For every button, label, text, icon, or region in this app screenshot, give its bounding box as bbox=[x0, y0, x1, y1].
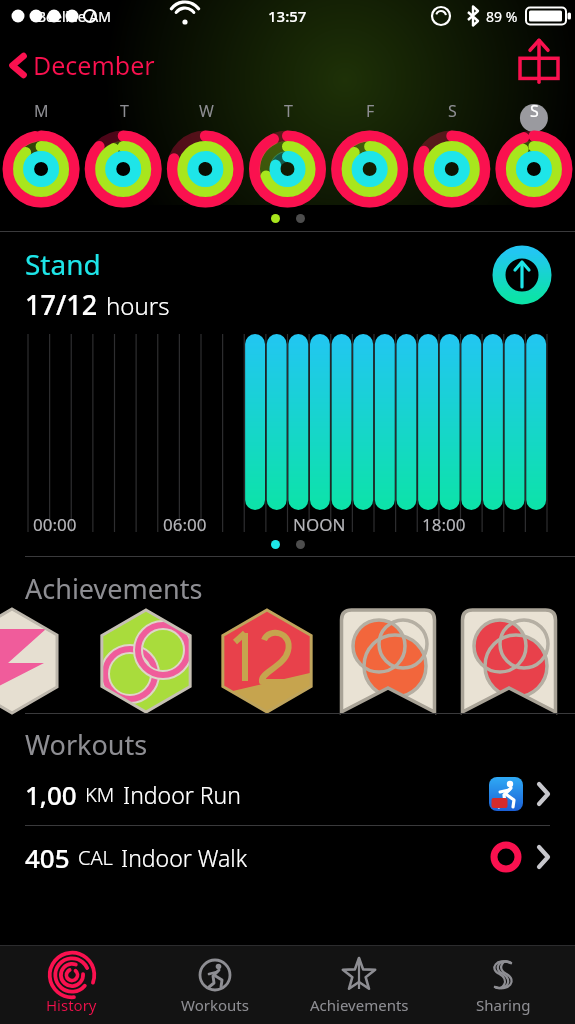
staticText: Achievements bbox=[25, 570, 203, 607]
staticText: M bbox=[34, 100, 49, 122]
button[interactable]: 1,00 bbox=[0, 763, 575, 825]
staticText: 13:57 bbox=[268, 6, 307, 26]
staticText: 00:00 bbox=[33, 513, 77, 536]
staticText: Achievements bbox=[310, 995, 409, 1015]
staticText: December bbox=[33, 48, 155, 82]
button[interactable]: Achievement badges bbox=[0, 607, 575, 713]
staticText: KM bbox=[85, 781, 115, 808]
button[interactable]: Stand goal complete bbox=[492, 245, 552, 305]
staticText: 89 % bbox=[486, 7, 518, 26]
button[interactable]: Sharing bbox=[431, 946, 575, 1024]
staticText: 1,00 bbox=[25, 777, 77, 812]
staticText: NOON bbox=[293, 513, 346, 536]
staticText: History bbox=[46, 995, 97, 1015]
staticText: hours bbox=[106, 289, 170, 322]
staticText: Workouts bbox=[25, 726, 148, 763]
staticText: T bbox=[284, 100, 293, 122]
staticText: Sharing bbox=[476, 995, 531, 1015]
staticText: 405 bbox=[25, 840, 70, 875]
staticText: Indoor Run bbox=[123, 779, 241, 810]
staticText: Beeline AM bbox=[37, 7, 111, 26]
staticText: 06:00 bbox=[163, 513, 207, 536]
staticText: Indoor Walk bbox=[121, 842, 248, 873]
button[interactable]: Workouts bbox=[143, 946, 287, 1024]
staticText: F bbox=[366, 100, 375, 122]
staticText: W bbox=[199, 100, 214, 122]
button[interactable]: December bbox=[0, 42, 169, 88]
staticText: 17/12 bbox=[25, 286, 98, 323]
button[interactable]: 405 bbox=[0, 826, 575, 888]
staticText: T bbox=[120, 100, 129, 122]
button[interactable]: History bbox=[0, 946, 143, 1024]
staticText: Workouts bbox=[181, 995, 249, 1015]
button[interactable]: Share bbox=[515, 41, 563, 89]
staticText: 18:00 bbox=[422, 513, 466, 536]
staticText: CAL bbox=[78, 844, 113, 871]
staticText: S bbox=[530, 100, 539, 122]
staticText: Stand bbox=[25, 245, 101, 283]
staticText: S bbox=[448, 100, 457, 122]
button[interactable]: Achievements bbox=[287, 946, 431, 1024]
